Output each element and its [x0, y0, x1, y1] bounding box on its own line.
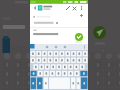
button[interactable]: Next app: [88, 0, 120, 90]
button[interactable]: Conversation: [37, 4, 65, 12]
button[interactable]: Send: [75, 33, 83, 41]
button[interactable]: Recipient chip: [33, 20, 55, 26]
button[interactable]: Recipients: [30, 12, 78, 19]
button[interactable]: Message body: [30, 28, 72, 43]
button[interactable]: Remove recipient: [54, 19, 60, 26]
button[interactable]: More options: [78, 4, 85, 12]
button[interactable]: Add recipient: [78, 12, 85, 19]
button[interactable]: Close: [71, 4, 78, 12]
button[interactable]: Keyboard: [30, 44, 88, 90]
button[interactable]: Previous app: [0, 0, 30, 90]
button[interactable]: Back: [32, 4, 38, 12]
button[interactable]: Edit: [64, 4, 71, 12]
